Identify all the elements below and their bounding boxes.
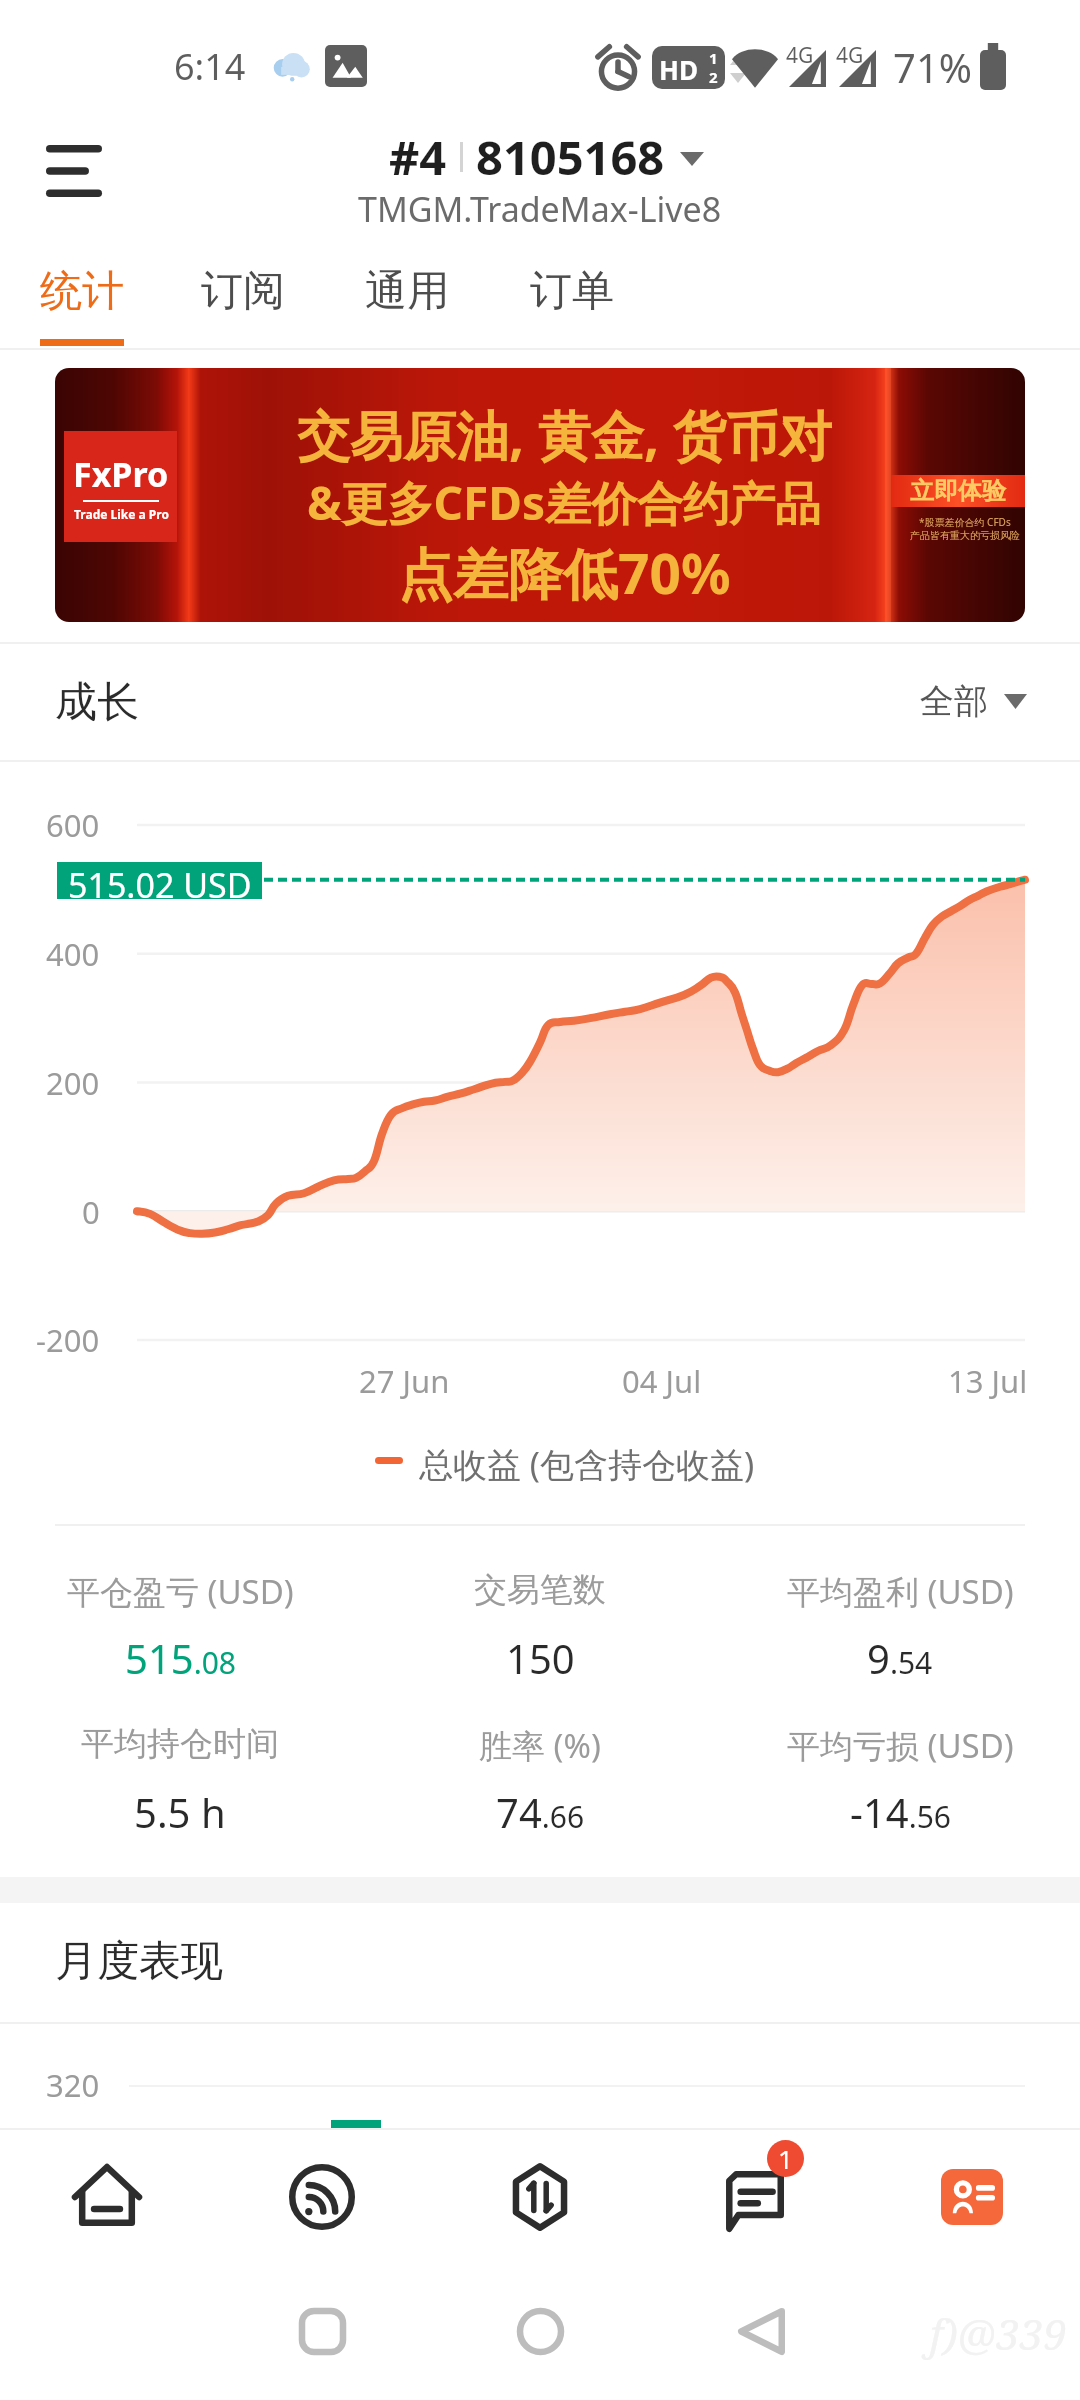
staticText: 9.54 [867, 1631, 933, 1685]
button[interactable]: Accounts [892, 2132, 1052, 2262]
staticText: 74.66 [496, 1785, 585, 1839]
staticText: 2 [709, 67, 718, 87]
staticText: 产品皆有重大的亏损风险 [910, 529, 1020, 542]
staticText: 1 [778, 2141, 793, 2176]
staticText: 6:14 [174, 42, 246, 91]
staticText: 点差降低70% [398, 535, 731, 610]
staticText: &更多CFDs差价合约产品 [307, 471, 822, 534]
staticText: 320 [46, 2064, 100, 2106]
staticText: 订单 [530, 265, 614, 318]
button[interactable]: Home [499, 2290, 581, 2372]
button[interactable]: 订单 [530, 258, 616, 324]
staticText: 8105168 [476, 125, 665, 189]
button[interactable]: 全部 [920, 678, 1035, 724]
staticText: TMGM.TradeMax-Live8 [358, 186, 722, 232]
staticText: 5.5 h [134, 1785, 226, 1839]
staticText: 胜率 (%) [479, 1723, 601, 1768]
staticText: 平仓盈亏 (USD) [67, 1569, 294, 1614]
staticText: HD [659, 52, 698, 87]
staticText: *股票差价合约 CFDs [919, 515, 1011, 529]
staticText: 4G [836, 41, 864, 70]
staticText: 515.02 USD [68, 862, 252, 899]
button[interactable]: Signals [242, 2132, 402, 2262]
staticText: 平均盈利 (USD) [787, 1569, 1014, 1614]
staticText: 立即体验 [910, 476, 1006, 506]
button[interactable]: Trade [460, 2132, 620, 2262]
staticText: 全部 [920, 680, 988, 723]
staticText: -14.56 [850, 1785, 951, 1839]
staticText: 统计 [40, 265, 124, 318]
button[interactable]: Menu [16, 128, 132, 218]
staticText: -200 [36, 1319, 100, 1361]
button[interactable]: Messages [689, 2121, 849, 2251]
button[interactable]: 订阅 [201, 258, 287, 324]
button[interactable]: 统计 [40, 258, 126, 324]
button[interactable]: Home [27, 2132, 187, 2262]
staticText: 月度表现 [55, 1935, 223, 1988]
staticText: 150 [506, 1631, 575, 1685]
staticText: 600 [46, 804, 100, 846]
staticText: 200 [46, 1062, 100, 1104]
staticText: #4 [389, 125, 447, 189]
staticText: 交易原油, 黄金, 货币对 [297, 398, 832, 470]
staticText: 515.08 [125, 1631, 236, 1685]
staticText: 04 Jul [622, 1360, 702, 1402]
button[interactable]: Recents [281, 2290, 363, 2372]
staticText: FxPro [73, 451, 169, 497]
staticText: 4G [786, 41, 814, 70]
staticText: 400 [46, 933, 100, 975]
button[interactable]: Back [720, 2290, 802, 2372]
staticText: 1 [709, 48, 718, 68]
staticText: 平均持仓时间 [81, 1723, 279, 1765]
staticText: 总收益 (包含持仓收益) [419, 1441, 755, 1487]
staticText: 订阅 [201, 265, 285, 318]
staticText: 成长 [55, 676, 139, 729]
staticText: 71% [893, 40, 972, 94]
staticText: ƒ)@339 [926, 2305, 1067, 2362]
staticText: 交易笔数 [474, 1569, 606, 1611]
button[interactable]: 通用 [365, 258, 451, 324]
staticText: Trade Like a Pro [74, 506, 169, 522]
staticText: 通用 [365, 265, 449, 318]
staticText: 13 Jul [948, 1360, 1028, 1402]
staticText: 平均亏损 (USD) [787, 1723, 1014, 1768]
staticText: 0 [82, 1191, 100, 1233]
button[interactable]: FxPro [55, 368, 1025, 622]
staticText: 27 Jun [359, 1360, 450, 1402]
